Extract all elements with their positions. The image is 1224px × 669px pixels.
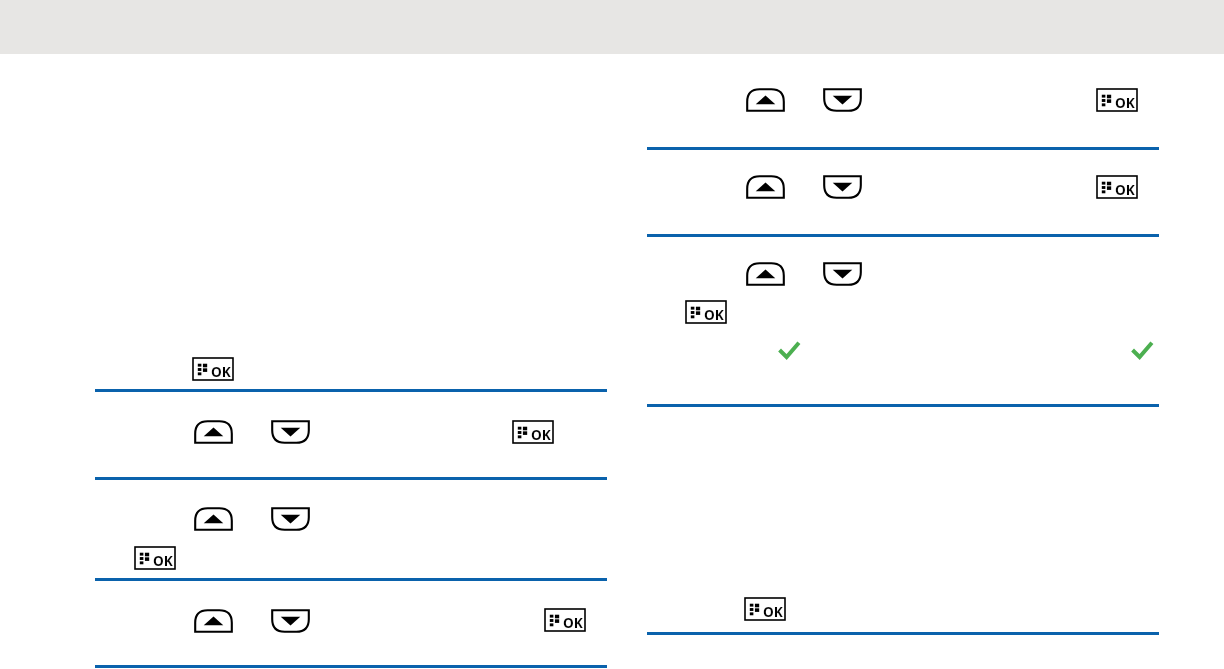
button[interactable]: Menu OK — [545, 609, 585, 631]
button[interactable]: Scroll up — [194, 420, 233, 444]
staticText: OK — [763, 602, 783, 621]
staticText: OK — [563, 613, 583, 632]
button[interactable]: Scroll down — [271, 420, 310, 444]
staticText: OK — [1115, 93, 1135, 112]
staticText: OK — [211, 362, 231, 381]
button[interactable]: Scroll up — [194, 609, 233, 633]
staticText: OK — [531, 425, 551, 444]
button[interactable]: Menu OK — [1097, 176, 1137, 198]
button[interactable]: Scroll up — [194, 507, 233, 531]
button[interactable]: Menu OK — [135, 547, 175, 569]
button[interactable]: Scroll up — [746, 262, 785, 286]
staticText: OK — [704, 305, 724, 324]
button[interactable]: Menu OK — [513, 421, 553, 443]
button[interactable]: Scroll down — [271, 609, 310, 633]
button[interactable]: Menu OK — [1097, 89, 1137, 111]
button[interactable]: Scroll down — [271, 507, 310, 531]
staticText: OK — [153, 551, 173, 570]
staticText: OK — [1115, 180, 1135, 199]
button[interactable]: Scroll down — [823, 175, 862, 199]
button[interactable]: Menu OK — [193, 358, 233, 380]
button[interactable]: Menu OK — [686, 301, 726, 323]
button[interactable]: Scroll down — [823, 88, 862, 112]
button[interactable]: Menu OK — [745, 598, 785, 620]
button[interactable]: Scroll up — [746, 175, 785, 199]
button[interactable]: Scroll up — [746, 88, 785, 112]
button[interactable]: Scroll down — [823, 262, 862, 286]
